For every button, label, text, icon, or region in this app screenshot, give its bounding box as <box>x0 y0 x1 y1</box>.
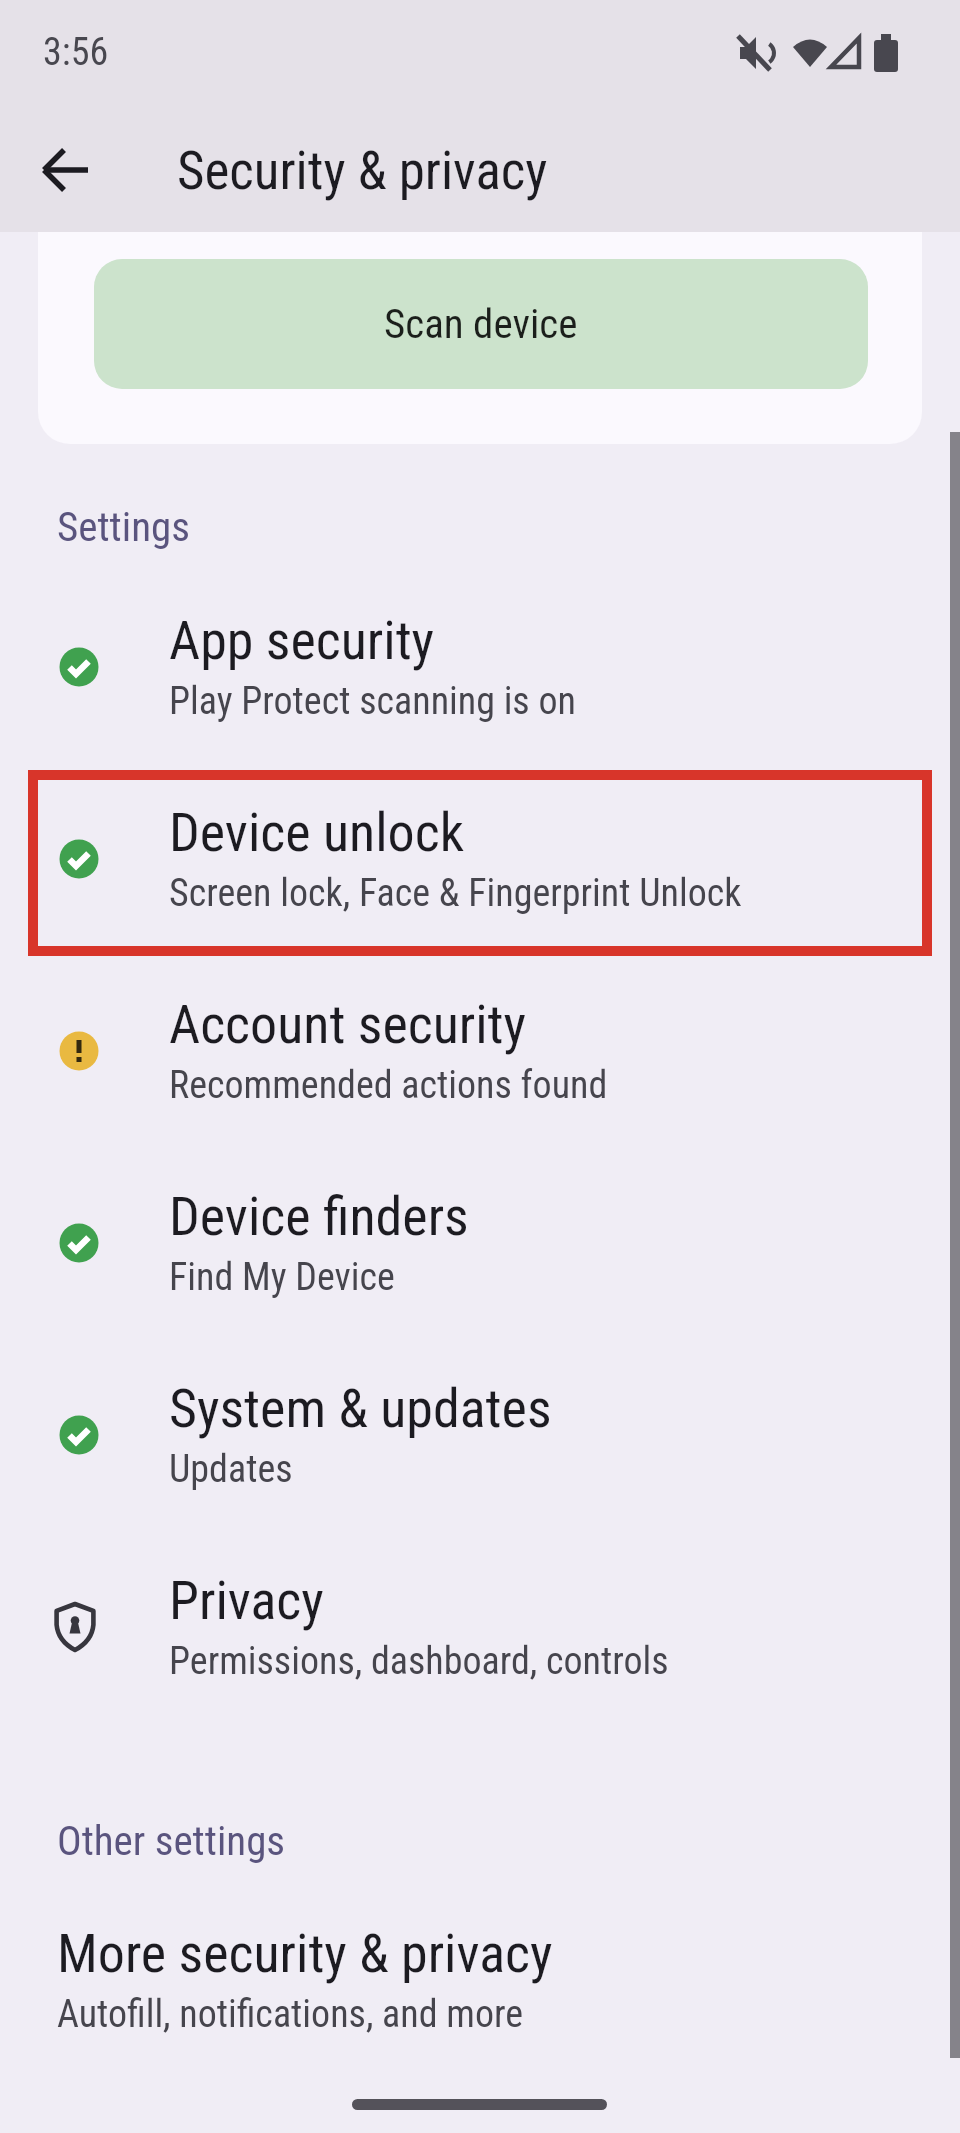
staticText: App security <box>169 609 435 672</box>
staticText: System & updates <box>169 1377 552 1440</box>
staticText: Security & privacy <box>177 140 548 202</box>
staticText: Screen lock, Face & Fingerprint Unlock <box>169 871 742 916</box>
staticText: Permissions, dashboard, controls <box>169 1639 669 1684</box>
button[interactable]: Device unlock <box>0 763 960 955</box>
button[interactable]: App security <box>0 571 960 763</box>
button[interactable]: Scan device <box>94 259 868 389</box>
staticText: Autofill, notifications, and more <box>57 1992 524 2037</box>
button[interactable]: More security & privacy <box>0 1880 960 2060</box>
button[interactable] <box>30 135 100 205</box>
staticText: Privacy <box>169 1569 324 1632</box>
staticText: Updates <box>169 1447 293 1492</box>
staticText: Recommended actions found <box>169 1063 608 1108</box>
staticText: Device finders <box>169 1185 469 1248</box>
staticText: Account security <box>169 993 527 1056</box>
button[interactable]: Device finders <box>0 1147 960 1339</box>
button[interactable]: System & updates <box>0 1339 960 1531</box>
staticText: Device unlock <box>169 801 464 864</box>
staticText: Scan device <box>384 300 578 348</box>
button[interactable]: Privacy <box>0 1531 960 1723</box>
staticText: Find My Device <box>169 1255 395 1300</box>
staticText: More security & privacy <box>57 1922 553 1985</box>
staticText: Other settings <box>57 1817 286 1865</box>
button[interactable]: Account security <box>0 955 960 1147</box>
staticText: Play Protect scanning is on <box>169 679 576 724</box>
staticText: 3:56 <box>43 30 109 75</box>
staticText: Settings <box>57 503 190 551</box>
